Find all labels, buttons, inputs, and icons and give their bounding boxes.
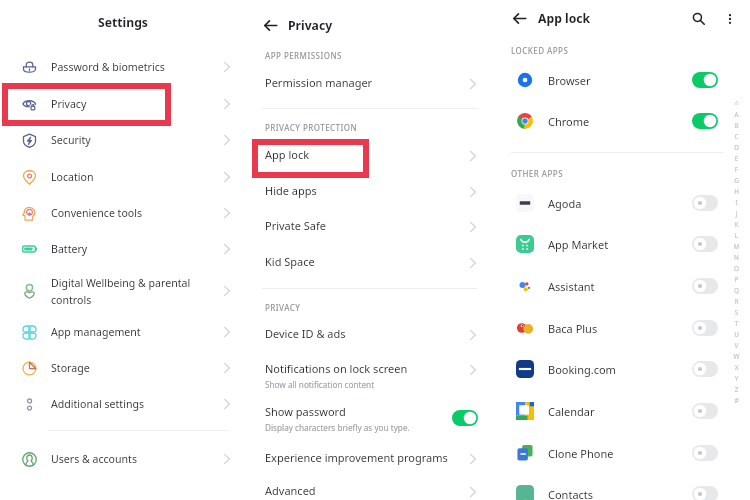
button[interactable]: Password & biometrics: [0, 49, 245, 85]
staticText: I: [731, 198, 742, 209]
button[interactable]: Contacts: [497, 474, 750, 500]
button[interactable]: Assistant: [497, 266, 750, 306]
staticText: T: [731, 319, 742, 330]
staticText: E: [731, 154, 742, 165]
staticText: Digital Wellbeing & parental: [51, 276, 191, 290]
button[interactable]: Privacy: [0, 86, 245, 122]
button[interactable]: Additional settings: [0, 386, 245, 422]
staticText: Location: [51, 170, 94, 184]
staticText: S: [731, 308, 742, 319]
staticText: N: [731, 253, 742, 264]
button[interactable]: Chrome: [497, 101, 750, 141]
button[interactable]: Digital Wellbeing & parental: [0, 273, 245, 309]
button[interactable]: Back: [260, 15, 280, 35]
button[interactable]: [692, 195, 718, 211]
button[interactable]: [692, 320, 718, 336]
staticText: App lock: [265, 147, 310, 162]
button[interactable]: [692, 278, 718, 294]
staticText: K: [731, 220, 742, 231]
staticText: Experience improvement programs: [265, 450, 448, 465]
button[interactable]: Back: [509, 8, 529, 28]
staticText: H: [731, 187, 742, 198]
staticText: Storage: [51, 361, 90, 375]
staticText: Calendar: [548, 404, 692, 419]
button[interactable]: Private Safe: [245, 218, 497, 240]
button[interactable]: Baca Plus: [497, 308, 750, 348]
staticText: Baca Plus: [548, 321, 692, 336]
button[interactable]: Storage: [0, 350, 245, 386]
button[interactable]: [692, 113, 718, 129]
staticText: Agoda: [548, 196, 692, 211]
button[interactable]: Battery: [0, 231, 245, 267]
staticText: O: [731, 264, 742, 275]
staticText: C: [731, 132, 742, 143]
staticText: Notifications on lock screen: [265, 361, 408, 376]
staticText: Contacts: [548, 487, 692, 500]
staticText: PRIVACY PROTECTION: [265, 122, 358, 133]
staticText: Password & biometrics: [51, 60, 165, 74]
staticText: Browser: [548, 73, 692, 88]
staticText: App management: [51, 325, 141, 339]
button[interactable]: Browser: [497, 60, 750, 100]
button[interactable]: Search: [687, 7, 710, 30]
staticText: X: [731, 363, 742, 374]
staticText: Advanced: [265, 483, 316, 498]
button[interactable]: Clone Phone: [497, 433, 750, 473]
button[interactable]: [692, 72, 718, 88]
staticText: Settings: [98, 14, 148, 31]
staticText: Additional settings: [51, 397, 145, 411]
staticText: APP PERMISSIONS: [265, 50, 342, 61]
staticText: M: [731, 242, 742, 253]
staticText: F: [731, 165, 742, 176]
button[interactable]: App lock: [245, 147, 497, 169]
staticText: W: [731, 352, 742, 363]
staticText: D: [731, 143, 742, 154]
staticText: Assistant: [548, 279, 692, 294]
button[interactable]: Convenience tools: [0, 195, 245, 231]
button[interactable]: Location: [0, 159, 245, 195]
button[interactable]: Notifications on lock screen: [245, 361, 497, 391]
button[interactable]: App Market: [497, 224, 750, 264]
staticText: Users & accounts: [51, 452, 138, 466]
staticText: Show password: [265, 404, 346, 419]
button[interactable]: Experience improvement programs: [245, 450, 497, 472]
staticText: U: [731, 330, 742, 341]
staticText: V: [731, 341, 742, 352]
button[interactable]: Advanced: [245, 483, 497, 500]
staticText: controls: [51, 293, 92, 307]
staticText: Private Safe: [265, 218, 327, 233]
button[interactable]: Hide apps: [245, 183, 497, 205]
staticText: B: [731, 121, 742, 132]
staticText: Battery: [51, 242, 88, 256]
staticText: Permission manager: [265, 75, 373, 90]
staticText: Chrome: [548, 114, 692, 129]
staticText: Privacy: [288, 17, 333, 34]
staticText: G: [731, 176, 742, 187]
button[interactable]: Agoda: [497, 183, 750, 223]
staticText: Kid Space: [265, 254, 315, 269]
button[interactable]: [692, 361, 718, 377]
button[interactable]: [692, 445, 718, 461]
staticText: ☆: [731, 99, 742, 110]
staticText: PRIVACY: [265, 302, 301, 313]
button[interactable]: Calendar: [497, 391, 750, 431]
button[interactable]: Device ID & ads: [245, 326, 497, 348]
button[interactable]: Permission manager: [245, 75, 497, 97]
button[interactable]: Kid Space: [245, 254, 497, 276]
button[interactable]: [692, 486, 718, 500]
button[interactable]: App management: [0, 314, 245, 350]
button[interactable]: [452, 410, 478, 426]
staticText: Z: [731, 385, 742, 396]
button[interactable]: Booking.com: [497, 349, 750, 389]
staticText: Security: [51, 133, 91, 147]
button[interactable]: [692, 236, 718, 252]
staticText: Q: [731, 286, 742, 297]
staticText: App lock: [538, 10, 591, 27]
button[interactable]: Show password: [245, 404, 497, 434]
staticText: Device ID & ads: [265, 326, 346, 341]
staticText: Hide apps: [265, 183, 317, 198]
button[interactable]: More options: [719, 8, 740, 29]
button[interactable]: [692, 403, 718, 419]
button[interactable]: Security: [0, 122, 245, 158]
button[interactable]: Users & accounts: [0, 441, 245, 477]
